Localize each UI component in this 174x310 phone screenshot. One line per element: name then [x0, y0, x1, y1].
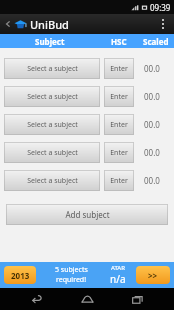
button[interactable]: Select a subject: [4, 86, 100, 107]
button[interactable]: Enter: [104, 86, 134, 107]
staticText: Select a subject: [27, 64, 78, 74]
staticText: Subject: [35, 36, 65, 47]
button[interactable]: Enter: [104, 142, 134, 163]
button[interactable]: Back: [24, 288, 50, 310]
staticText: 00.0: [144, 119, 160, 130]
staticText: Select a subject: [27, 92, 78, 102]
button[interactable]: More options: [156, 14, 170, 34]
button[interactable]: Recent apps: [124, 288, 150, 310]
button[interactable]: Navigate up: [2, 18, 14, 30]
staticText: Select a subject: [27, 148, 78, 158]
staticText: required!: [56, 275, 87, 285]
staticText: 00.0: [144, 63, 160, 74]
staticText: Enter: [110, 176, 128, 186]
staticText: Select a subject: [27, 120, 78, 130]
staticText: 5 subjects: [55, 265, 88, 275]
staticText: Enter: [110, 120, 128, 130]
button[interactable]: Select a subject: [4, 142, 100, 163]
staticText: Enter: [110, 64, 128, 74]
staticText: Scaled: [143, 36, 169, 47]
button[interactable]: Home: [74, 288, 100, 310]
staticText: 09:39: [150, 2, 171, 13]
staticText: Enter: [110, 92, 128, 102]
staticText: 2013: [11, 270, 30, 281]
button[interactable]: Select a subject: [4, 114, 100, 135]
button[interactable]: Enter: [104, 170, 134, 191]
staticText: Add subject: [65, 209, 110, 220]
staticText: >>: [148, 270, 158, 281]
staticText: 00.0: [144, 147, 160, 158]
staticText: Select a subject: [27, 176, 78, 186]
staticText: HSC: [111, 36, 127, 47]
staticText: Enter: [110, 148, 128, 158]
staticText: n/a: [110, 272, 126, 286]
staticText: ATAR: [111, 264, 125, 272]
staticText: 00.0: [144, 91, 160, 102]
button[interactable]: Select year: [4, 266, 36, 284]
staticText: UniBud: [30, 17, 69, 32]
button[interactable]: Next: [136, 266, 170, 284]
button[interactable]: Enter: [104, 114, 134, 135]
button[interactable]: Select a subject: [4, 58, 100, 79]
button[interactable]: Enter: [104, 58, 134, 79]
button[interactable]: Add subject: [6, 204, 168, 225]
staticText: 00.0: [144, 175, 160, 186]
button[interactable]: Select a subject: [4, 170, 100, 191]
